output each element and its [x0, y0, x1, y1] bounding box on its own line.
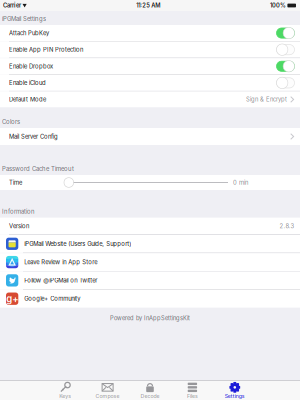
staticText: 0 min [233, 179, 248, 186]
staticText: Information [2, 208, 35, 215]
staticText: Enable Dropbox [9, 63, 53, 70]
button[interactable]: Mail Server Config [0, 128, 300, 145]
button[interactable]: g+ [0, 290, 300, 308]
button[interactable]: Compose [86, 381, 129, 400]
button[interactable]: Enable Dropbox [0, 58, 300, 74]
staticText: Sign & Encrypt [246, 96, 287, 103]
staticText: Google+ Community [24, 295, 80, 302]
staticText: Colors [2, 118, 20, 125]
staticText: Follow @iPGMail on Twitter [24, 277, 97, 284]
staticText: Decode [140, 393, 159, 399]
button[interactable]: iPGMail Website (Users Guide, Support) [0, 235, 300, 253]
button[interactable]: Attach PubKey [0, 25, 300, 41]
staticText: Compose [96, 393, 120, 399]
staticText: Time [9, 179, 22, 186]
staticText: Carrier [3, 2, 21, 9]
staticText: Attach PubKey [9, 29, 49, 37]
staticText: Version [9, 222, 29, 230]
button[interactable]: Follow @iPGMail on Twitter [0, 271, 300, 289]
staticText: Leave Review in App Store [24, 259, 97, 266]
button[interactable]: Leave Review in App Store [0, 253, 300, 271]
button[interactable]: Files [171, 381, 214, 400]
staticText: 100% [270, 2, 286, 9]
staticText: Files [187, 393, 198, 399]
button[interactable]: Settings [214, 381, 256, 400]
staticText: Default Mode [9, 96, 46, 103]
button[interactable]: Default Mode [0, 91, 300, 107]
staticText: Settings [225, 393, 245, 399]
staticText: Password Cache Timeout [2, 165, 74, 172]
staticText: 2.8.3 [279, 222, 294, 230]
staticText: g+ [6, 293, 18, 304]
staticText: iPGMail Settings [2, 15, 46, 22]
staticText: Powered by InAppSettingsKit [110, 315, 190, 321]
staticText: Enable iCloud [9, 79, 46, 86]
button[interactable]: Decode [129, 381, 171, 400]
button[interactable]: Enable App PIN Protection [0, 42, 300, 58]
staticText: 11:25 AM [136, 2, 160, 9]
button[interactable]: Keys [44, 381, 86, 400]
staticText: Mail Server Config [9, 133, 58, 140]
staticText: Enable App PIN Protection [9, 46, 83, 53]
staticText: iPGMail Website (Users Guide, Support) [24, 240, 131, 247]
staticText: Keys [59, 393, 71, 399]
button[interactable]: Enable iCloud [0, 75, 300, 91]
